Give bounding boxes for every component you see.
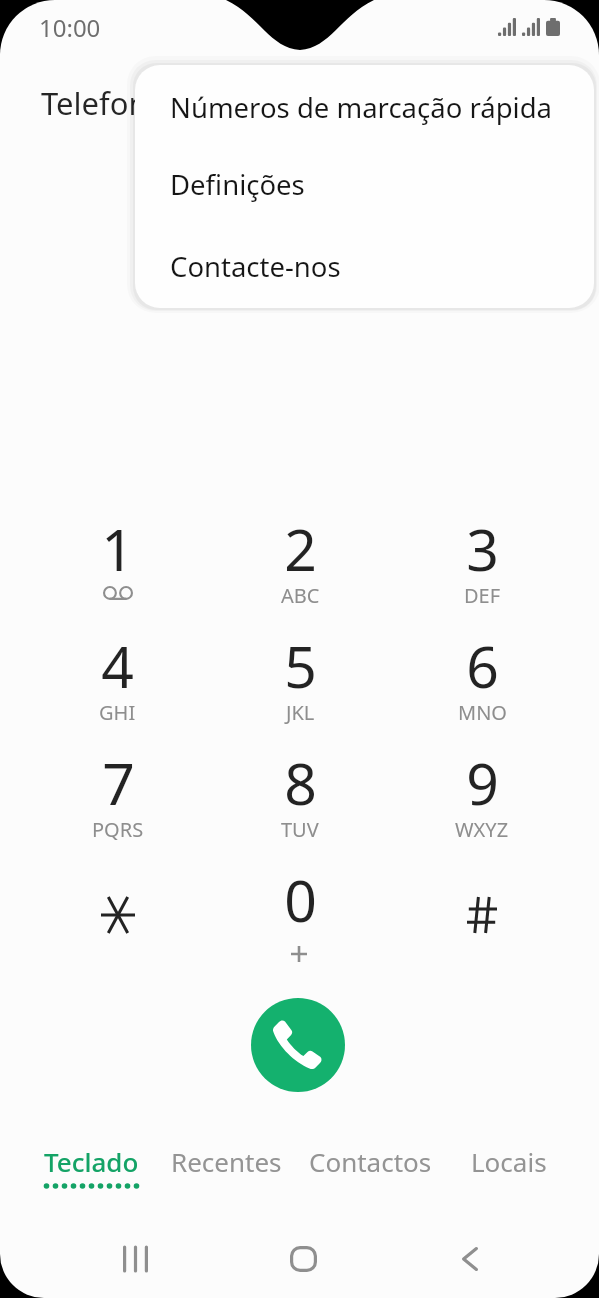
staticText: 0	[284, 861, 317, 939]
staticText: Teclado	[44, 1144, 139, 1179]
staticText: Contactos	[309, 1144, 432, 1179]
staticText: 9	[466, 744, 499, 822]
button[interactable]	[26, 861, 209, 978]
button[interactable]: Recent apps	[105, 1229, 165, 1289]
staticText: MNO	[458, 699, 507, 726]
button[interactable]: Recentes	[156, 1144, 296, 1196]
button[interactable]: 3	[391, 510, 573, 627]
button[interactable]: 9	[391, 744, 573, 861]
staticText: TUV	[281, 816, 319, 843]
staticText: 2	[284, 510, 317, 588]
staticText: PQRS	[92, 816, 144, 843]
button[interactable]: Locais	[439, 1144, 579, 1196]
button[interactable]: Definições	[135, 145, 594, 226]
button[interactable]: Contactos	[300, 1144, 440, 1196]
button[interactable]: 5	[209, 627, 391, 744]
staticText: 10:00	[39, 11, 101, 44]
button[interactable]: Teclado	[21, 1144, 161, 1196]
staticText: JKL	[286, 699, 315, 726]
button[interactable]: 7	[26, 744, 209, 861]
staticText: Definições	[170, 166, 305, 203]
staticText: GHI	[99, 699, 136, 726]
button[interactable]: 6	[391, 627, 573, 744]
staticText: 7	[102, 744, 135, 822]
staticText: 6	[466, 627, 499, 705]
staticText: 3	[466, 510, 499, 588]
staticText: Contacte-nos	[170, 248, 341, 285]
staticText: 8	[284, 744, 317, 822]
staticText: Números de marcação rápida	[170, 89, 553, 126]
staticText: 5	[284, 627, 317, 705]
button[interactable]: 8	[209, 744, 391, 861]
staticText: 4	[101, 627, 134, 705]
button[interactable]: 2	[209, 510, 391, 627]
staticText: Locais	[471, 1144, 547, 1179]
button[interactable]: 0	[209, 861, 391, 978]
button[interactable]: Call	[251, 998, 345, 1092]
button[interactable]: 4	[26, 627, 209, 744]
staticText: 1	[101, 510, 134, 588]
staticText: WXYZ	[455, 816, 509, 843]
button[interactable]: Contacte-nos	[135, 225, 594, 306]
staticText: Recentes	[171, 1144, 282, 1179]
staticText: DEF	[464, 582, 501, 609]
button[interactable]: Back	[440, 1229, 500, 1289]
button[interactable]	[391, 861, 573, 978]
button[interactable]: Números de marcação rápida	[135, 65, 594, 146]
staticText: ABC	[281, 582, 320, 609]
staticText: Telefone	[41, 82, 166, 124]
button[interactable]: Home	[273, 1229, 333, 1289]
button[interactable]: 1	[26, 510, 209, 627]
